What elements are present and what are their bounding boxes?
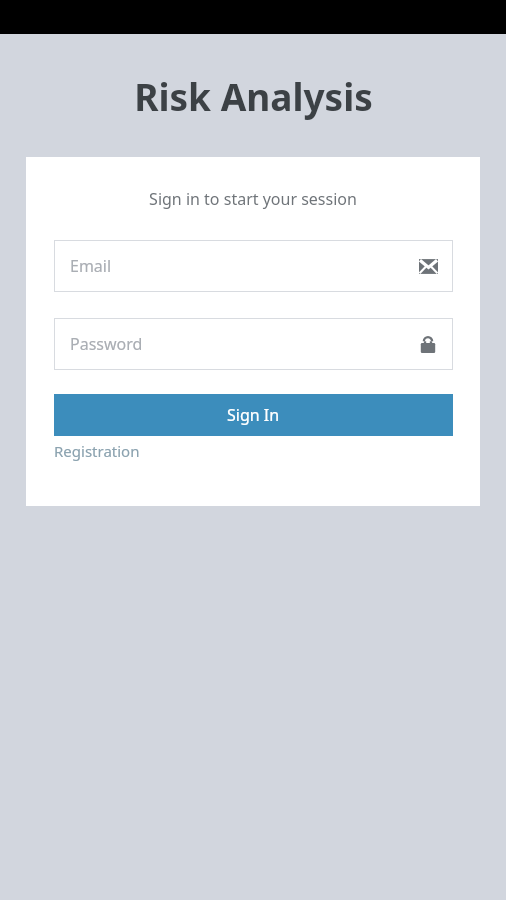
button[interactable]: Registration (54, 439, 140, 463)
button[interactable]: Password field (54, 318, 453, 370)
button[interactable]: Email field (54, 240, 453, 292)
staticText: Sign in to start your session (26, 188, 480, 210)
staticText: Risk Analysis (134, 71, 373, 121)
staticText: Email (70, 255, 112, 277)
staticText: Registration (54, 441, 140, 461)
staticText: Password (70, 333, 143, 355)
staticText: Sign In (227, 404, 280, 426)
button[interactable]: Sign In (54, 394, 453, 436)
